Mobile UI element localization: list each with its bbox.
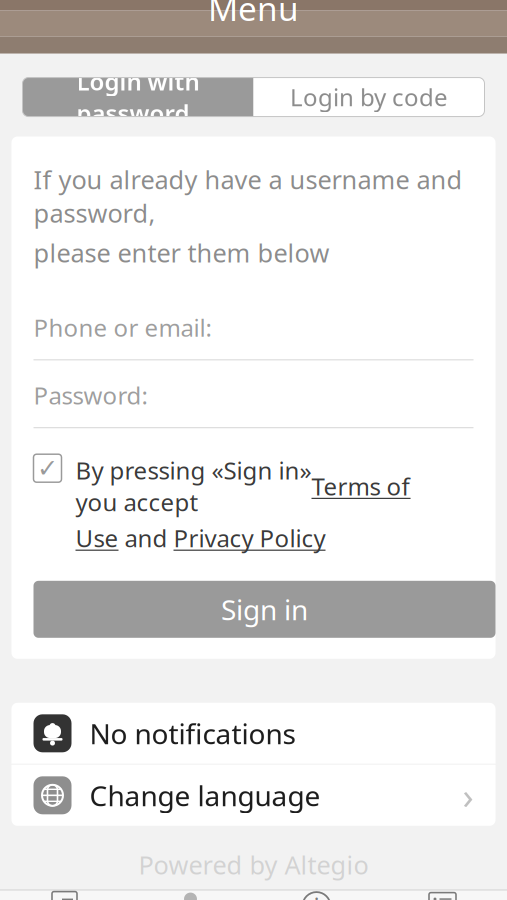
button[interactable]: i: [253, 890, 379, 900]
staticText: If you already have a username and passw…: [33, 162, 462, 230]
staticText: ›: [462, 771, 473, 819]
button[interactable]: No notifications: [11, 703, 495, 764]
staticText: Privacy Policy: [173, 522, 325, 554]
staticText: Terms of: [311, 470, 409, 502]
staticText: Use: [75, 522, 118, 554]
staticText: please enter them below: [33, 236, 329, 269]
staticText: ✓: [37, 454, 58, 483]
button[interactable]: Booking: [1, 890, 127, 900]
button[interactable]: Login with password: [22, 77, 253, 116]
staticText: Login by code: [290, 81, 448, 113]
staticText: Password:: [33, 379, 147, 411]
button[interactable]: Login by code: [253, 77, 484, 116]
staticText: Sign in: [221, 591, 308, 628]
button[interactable]: My bookings: [379, 890, 505, 900]
button[interactable]: ✓: [33, 428, 473, 554]
staticText: Menu: [208, 0, 299, 30]
staticText: i: [313, 890, 319, 900]
staticText: By pressing «Sign in» you accept: [75, 454, 311, 518]
button[interactable]: Profile: [127, 890, 253, 900]
staticText: Login with password: [76, 65, 199, 129]
staticText: and: [118, 522, 173, 554]
staticText: Change language: [89, 777, 320, 814]
staticText: Powered by Altegio: [138, 848, 368, 881]
staticText: Phone or email:: [33, 311, 211, 343]
staticText: No notifications: [89, 715, 295, 752]
button[interactable]: Change language: [11, 765, 495, 826]
button[interactable]: Sign in: [33, 581, 495, 638]
